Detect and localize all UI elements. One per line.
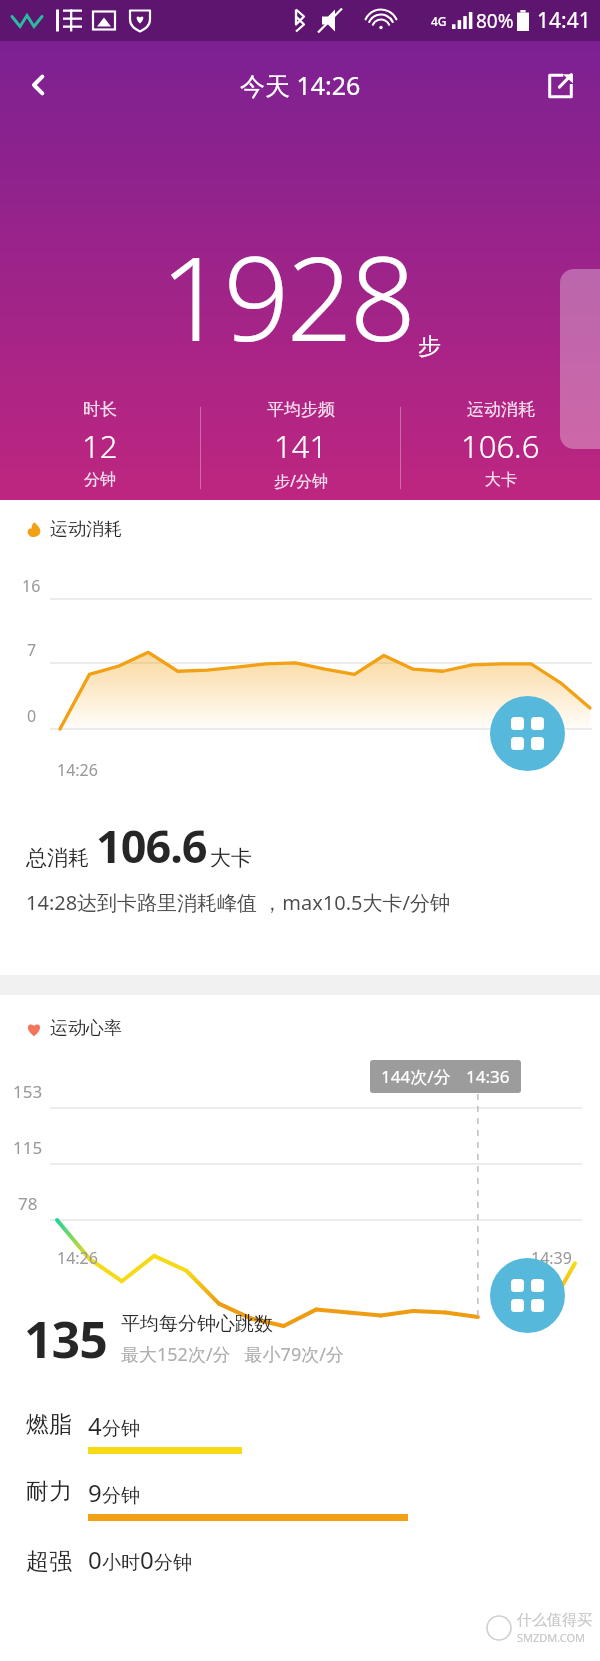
button[interactable]: More options (490, 1258, 565, 1333)
button[interactable]: More options (490, 696, 565, 771)
staticText: 运动消耗 (467, 399, 535, 420)
button[interactable]: 燃脂 (26, 1409, 242, 1454)
staticText: 超强 (26, 1547, 72, 1576)
staticText: 0 (27, 705, 37, 727)
staticText: 115 (13, 1136, 43, 1159)
staticText: 燃脂 (26, 1410, 72, 1439)
staticText: 9 (88, 1476, 102, 1509)
button[interactable]: 超强 (26, 1543, 192, 1576)
staticText: 分钟 (154, 1551, 192, 1575)
button[interactable]: Share (532, 57, 588, 113)
staticText: 16 (22, 575, 41, 597)
staticText: 12 (82, 425, 118, 467)
staticText: 耐力 (26, 1477, 72, 1506)
staticText: 分钟 (102, 1417, 140, 1441)
staticText: 大卡 (485, 470, 517, 490)
button[interactable]: 运动消耗 (401, 399, 600, 490)
staticText: 7 (27, 639, 37, 661)
staticText: 最大152次/分 最小79次/分 (121, 1342, 344, 1367)
staticText: 时长 (83, 399, 117, 420)
staticText: 运动心率 (50, 1017, 122, 1040)
staticText: 4G (431, 13, 447, 29)
staticText: 14:26 (57, 1247, 98, 1269)
staticText: 141 (274, 425, 328, 467)
staticText: 平均步频 (267, 399, 335, 420)
button[interactable]: Back (10, 57, 66, 113)
staticText: 135 (24, 1305, 107, 1373)
staticText: 分钟 (102, 1484, 140, 1508)
staticText: 今天 14:26 (240, 68, 361, 102)
staticText: 153 (13, 1080, 43, 1103)
staticText: 小时 (102, 1551, 140, 1575)
staticText: 1928 (160, 217, 413, 375)
staticText: 0 (140, 1543, 154, 1576)
staticText: 14:28达到卡路里消耗峰值 ，max10.5大卡/分钟 (26, 889, 450, 916)
staticText: 14:26 (57, 759, 98, 781)
staticText: 运动消耗 (50, 518, 122, 541)
staticText: 14:36 (466, 1065, 510, 1088)
staticText: 106.6 (461, 425, 540, 467)
button[interactable]: 时长 (0, 399, 200, 490)
button[interactable]: 耐力 (26, 1476, 408, 1521)
staticText: 80% (476, 8, 514, 34)
staticText: 4 (88, 1409, 102, 1442)
staticText: SMZDM.COM (517, 1630, 586, 1645)
button[interactable]: 运动心率 (26, 1017, 122, 1040)
staticText: 总消耗 (26, 845, 89, 871)
staticText: 0 (88, 1543, 102, 1576)
staticText: 14:39 (531, 1247, 572, 1269)
button[interactable]: 运动消耗 (26, 518, 122, 541)
staticText: 14:41 (537, 6, 591, 35)
staticText: 什么值得买 (517, 1611, 592, 1630)
staticText: 平均每分钟心跳数 (121, 1312, 273, 1336)
staticText: 步 (418, 332, 441, 361)
staticText: 106.6 (96, 815, 207, 876)
staticText: 144次/分 (381, 1065, 451, 1088)
staticText: 分钟 (84, 470, 116, 490)
staticText: 大卡 (210, 845, 252, 871)
staticText: 步/分钟 (274, 470, 328, 492)
staticText: 78 (18, 1192, 38, 1215)
button[interactable]: 平均步频 (201, 399, 400, 492)
